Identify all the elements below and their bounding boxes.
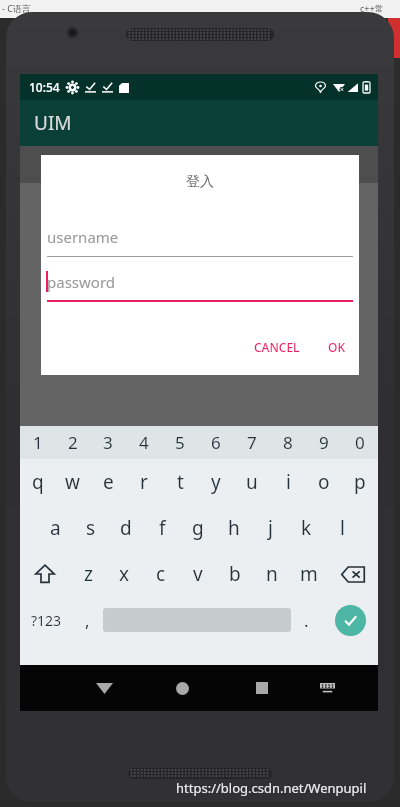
staticText: m (300, 561, 318, 587)
staticText: y (211, 469, 221, 495)
button[interactable]: username (47, 227, 353, 257)
staticText: 4 (139, 431, 149, 454)
button[interactable]: ?123 (20, 597, 72, 643)
button[interactable]: l (324, 505, 360, 551)
button[interactable]: m (290, 551, 327, 597)
staticText: t (177, 469, 184, 495)
staticText: b (229, 561, 241, 587)
staticText: x (119, 561, 130, 587)
staticText: . (304, 609, 309, 632)
staticText: e (103, 469, 114, 495)
button[interactable]: f (144, 505, 180, 551)
staticText: w (65, 469, 80, 495)
staticText: 0 (355, 431, 365, 454)
staticText: 5 (175, 431, 185, 454)
staticText: r (140, 469, 148, 495)
button[interactable]: a (38, 505, 73, 551)
button[interactable]: UIM (20, 100, 378, 146)
staticText: CANCEL (254, 339, 300, 355)
staticText: https://blog.csdn.net/Wenpupil (176, 779, 367, 797)
button[interactable]: q (20, 459, 55, 505)
staticText: n (266, 561, 278, 587)
button[interactable]: 8 (270, 426, 306, 459)
button[interactable]: y (198, 459, 234, 505)
button[interactable]: 1 (20, 426, 55, 459)
button[interactable]: k (288, 505, 324, 551)
button[interactable]: 4 (126, 426, 162, 459)
staticText: z (84, 561, 93, 587)
staticText: 8 (283, 431, 293, 454)
button[interactable]: Home (140, 665, 224, 711)
button[interactable]: t (162, 459, 198, 505)
button[interactable]: Switch keyboard (299, 665, 356, 711)
staticText: g (192, 515, 204, 541)
staticText: s (86, 515, 96, 541)
staticText: 3 (103, 431, 113, 454)
staticText: p (354, 469, 366, 495)
staticText: j (268, 515, 273, 541)
staticText: password (47, 272, 115, 292)
button[interactable]: d (108, 505, 144, 551)
button[interactable]: 2 (55, 426, 90, 459)
button[interactable]: . (291, 597, 322, 643)
button[interactable]: x (106, 551, 142, 597)
button[interactable]: e (90, 459, 126, 505)
staticText: 1 (33, 431, 43, 454)
staticText: - C语言 (2, 2, 31, 14)
staticText: username (47, 227, 119, 247)
button[interactable]: Shift (20, 551, 70, 597)
staticText: f (159, 515, 166, 541)
button[interactable]: Recents (224, 665, 299, 711)
button[interactable]: u (234, 459, 270, 505)
button[interactable]: 5 (162, 426, 198, 459)
staticText: k (301, 515, 312, 541)
staticText: h (228, 515, 240, 541)
button[interactable]: o (306, 459, 342, 505)
staticText: 6 (211, 431, 221, 454)
staticText: q (32, 469, 44, 495)
button[interactable]: 3 (90, 426, 126, 459)
staticText: v (193, 561, 203, 587)
button[interactable]: , (72, 597, 103, 643)
staticText: a (50, 515, 61, 541)
staticText: , (85, 609, 90, 632)
button[interactable]: p (342, 459, 378, 505)
staticText: l (340, 515, 345, 541)
staticText: 登入 (41, 173, 359, 191)
staticText: c++常 (360, 2, 384, 14)
button[interactable]: 9 (306, 426, 342, 459)
button[interactable]: c (142, 551, 179, 597)
staticText: u (246, 469, 258, 495)
staticText: 9 (319, 431, 329, 454)
button[interactable]: h (216, 505, 252, 551)
staticText: d (120, 515, 132, 541)
button[interactable]: CANCEL (246, 333, 308, 361)
button[interactable]: 7 (234, 426, 270, 459)
button[interactable]: b (216, 551, 253, 597)
button[interactable]: r (126, 459, 162, 505)
button[interactable]: password (47, 272, 353, 302)
button[interactable]: v (179, 551, 216, 597)
button[interactable]: Backspace (327, 551, 378, 597)
button[interactable]: 0 (342, 426, 378, 459)
button[interactable]: Enter (322, 597, 378, 643)
button[interactable]: Back (69, 665, 140, 711)
button[interactable]: n (253, 551, 290, 597)
staticText: 2 (68, 431, 78, 454)
button[interactable]: j (252, 505, 288, 551)
staticText: 7 (247, 431, 257, 454)
button[interactable]: OK (320, 333, 353, 361)
button[interactable]: w (55, 459, 90, 505)
button[interactable]: i (270, 459, 306, 505)
staticText: 10:54 (29, 79, 60, 95)
staticText: ?123 (31, 611, 62, 630)
staticText: i (286, 469, 291, 495)
staticText: o (318, 469, 330, 495)
button[interactable]: z (70, 551, 106, 597)
staticText: UIM (34, 110, 72, 136)
staticText: c (156, 561, 166, 587)
button[interactable]: s (73, 505, 108, 551)
button[interactable]: 6 (198, 426, 234, 459)
button[interactable]: g (180, 505, 216, 551)
